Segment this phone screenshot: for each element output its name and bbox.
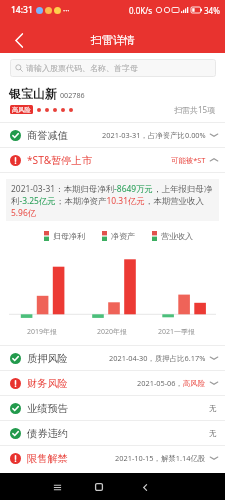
- staticText: 2020年报: [97, 327, 128, 337]
- button[interactable]: Home: [88, 476, 110, 498]
- button[interactable]: 请输入股票代码、名称、首字母: [10, 59, 216, 77]
- staticText: 扫雷详情: [91, 33, 135, 47]
- staticText: 2021-04-30，质押占比6.17%: [109, 353, 206, 363]
- button[interactable]: 财务风险: [0, 371, 225, 395]
- staticText: 34%: [204, 5, 220, 16]
- staticText: 无: [209, 404, 217, 413]
- staticText: 财务风险: [27, 377, 68, 390]
- button[interactable]: 商誉减值: [0, 123, 225, 147]
- staticText: 2021-03-31：本期归母净利-8649万元，上年报归母净 利-3.25亿元…: [11, 183, 219, 221]
- staticText: 扫雷共15项: [174, 104, 216, 115]
- staticText: 0.0K/s: [129, 5, 153, 16]
- button[interactable]: 业绩预告: [0, 396, 225, 420]
- staticText: 2021-10-15，解禁1.14亿股: [115, 453, 206, 463]
- staticText: 商誉减值: [27, 129, 68, 142]
- staticText: 限售解禁: [27, 452, 68, 465]
- staticText: 银宝山新: [9, 86, 57, 101]
- staticText: 高风险: [12, 106, 31, 114]
- staticText: 请输入股票代码、名称、首字母: [26, 63, 138, 73]
- button[interactable]: 债券违约: [0, 421, 225, 445]
- staticText: 2021一季报: [158, 327, 196, 337]
- staticText: 2021-03-31，占净资产比0.00%: [102, 130, 206, 140]
- staticText: 2019年报: [27, 327, 58, 337]
- button[interactable]: 返回: [6, 27, 32, 53]
- staticText: 无: [209, 429, 217, 438]
- staticText: 营业收入: [161, 231, 193, 241]
- staticText: 2021-05-06，高风险: [137, 378, 206, 388]
- button[interactable]: 质押风险: [0, 346, 225, 370]
- staticText: 归母净利: [53, 231, 85, 241]
- staticText: 质押风险: [27, 352, 68, 365]
- staticText: 债券违约: [27, 427, 68, 440]
- button[interactable]: Back: [134, 476, 156, 498]
- button[interactable]: *ST&暂停上市: [0, 148, 225, 172]
- staticText: 14:31: [11, 4, 33, 16]
- staticText: *ST&暂停上市: [27, 153, 92, 167]
- button[interactable]: Recents: [46, 476, 68, 498]
- button[interactable]: 限售解禁: [0, 446, 225, 470]
- staticText: 业绩预告: [27, 402, 68, 415]
- staticText: ···: [63, 5, 70, 16]
- staticText: 可能被*ST: [171, 155, 206, 165]
- staticText: 002786: [60, 90, 85, 100]
- staticText: 净资产: [111, 231, 135, 241]
